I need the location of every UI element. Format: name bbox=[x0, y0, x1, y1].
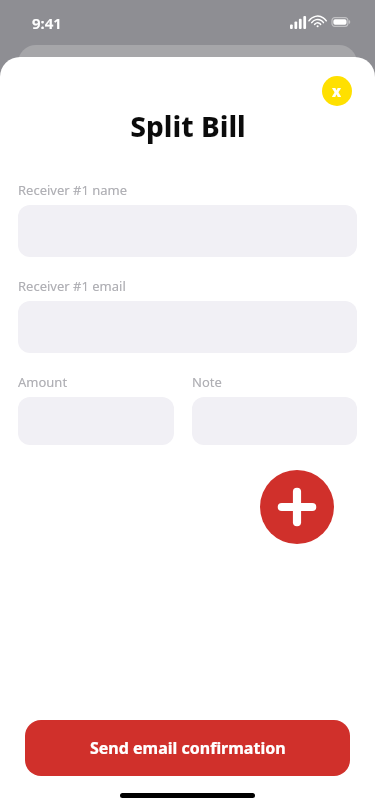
staticText: Receiver #1 email bbox=[18, 277, 126, 295]
staticText: Amount bbox=[18, 373, 68, 391]
staticText: 9:41 bbox=[32, 13, 62, 33]
staticText: x bbox=[332, 81, 342, 101]
staticText: Split Bill bbox=[130, 107, 246, 145]
button[interactable]: Add receiver bbox=[260, 470, 334, 544]
button[interactable]: Close bbox=[322, 76, 352, 106]
staticText: Send email confirmation bbox=[90, 737, 286, 759]
staticText: Note bbox=[192, 373, 222, 391]
button[interactable]: Send email confirmation bbox=[25, 720, 350, 776]
staticText: Receiver #1 name bbox=[18, 181, 128, 199]
